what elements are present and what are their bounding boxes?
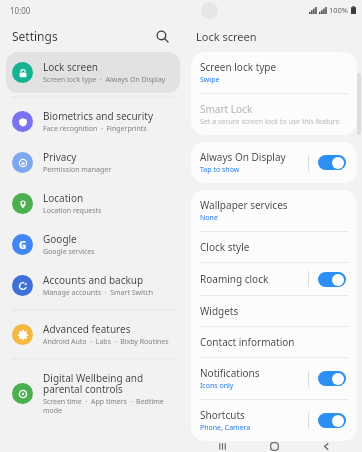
button[interactable]: Notifications <box>191 358 357 399</box>
staticText: Manage accounts · Smart Switch <box>43 288 154 298</box>
staticText: Set a secure screen lock to use this fea… <box>200 117 342 127</box>
button[interactable]: Roaming clock toggle <box>318 272 346 287</box>
staticText: Widgets <box>200 304 239 318</box>
button[interactable]: Smart Lock <box>191 94 357 135</box>
button[interactable]: Notifications toggle <box>318 371 346 386</box>
button[interactable]: Biometrics and security <box>6 101 180 142</box>
button[interactable]: Lock screen <box>6 52 180 93</box>
staticText: Swipe <box>200 75 220 85</box>
button[interactable]: Advanced features <box>6 314 180 355</box>
staticText: Clock style <box>200 240 250 254</box>
button[interactable]: Widgets <box>191 296 357 326</box>
button[interactable]: Privacy <box>6 142 180 183</box>
staticText: G <box>19 238 27 252</box>
staticText: 10:00 <box>10 5 31 16</box>
button[interactable]: Roaming clock <box>191 263 357 295</box>
button[interactable]: Screen lock type <box>191 52 357 93</box>
staticText: None <box>200 213 218 223</box>
staticText: Roaming clock <box>200 272 269 286</box>
staticText: Permission manager <box>43 165 112 175</box>
button[interactable]: Home <box>258 441 290 452</box>
staticText: Google <box>43 232 77 246</box>
staticText: Privacy <box>43 150 77 164</box>
button[interactable]: Always On Display toggle <box>318 155 346 170</box>
staticText: Phone, Camera <box>200 423 251 433</box>
staticText: Digital Wellbeing and parental controls <box>43 371 174 396</box>
button[interactable]: Recents <box>206 441 238 452</box>
button[interactable]: Digital Wellbeing and parental controls <box>6 363 180 423</box>
staticText: Settings <box>12 28 58 44</box>
staticText: Notifications <box>200 366 260 380</box>
button[interactable]: G <box>6 224 180 265</box>
staticText: Wallpaper services <box>200 198 288 212</box>
button[interactable]: Search <box>150 24 174 48</box>
staticText: Accounts and backup <box>43 273 144 287</box>
staticText: Screen lock type <box>200 60 277 74</box>
button[interactable]: Location <box>6 183 180 224</box>
staticText: Lock screen <box>43 60 99 74</box>
staticText: Location <box>43 191 84 205</box>
staticText: 100% <box>329 5 349 15</box>
staticText: Tap to show <box>200 165 240 175</box>
button[interactable]: Shortcuts <box>191 400 357 441</box>
staticText: Biometrics and security <box>43 109 153 123</box>
button[interactable]: Shortcuts toggle <box>318 413 346 428</box>
staticText: Screen lock type · Always On Display <box>43 75 166 85</box>
staticText: Location requests <box>43 206 102 216</box>
staticText: Android Auto · Labs · Bixby Routines <box>43 337 169 347</box>
button[interactable]: Wallpaper services <box>191 190 357 231</box>
staticText: Shortcuts <box>200 408 245 422</box>
staticText: Always On Display <box>200 150 286 164</box>
button[interactable]: Clock style <box>191 232 357 262</box>
staticText: Icons only <box>200 381 234 391</box>
staticText: Google services <box>43 247 95 257</box>
staticText: Face recognition · Fingerprints <box>43 124 147 134</box>
button[interactable]: Contact information <box>191 327 357 357</box>
staticText: Contact information <box>200 335 295 349</box>
staticText: Smart Lock <box>200 102 253 116</box>
staticText: Lock screen <box>196 29 257 44</box>
staticText: Screen time · App timers · Bedtime mode <box>43 397 174 415</box>
staticText: Advanced features <box>43 322 131 336</box>
button[interactable]: Back <box>310 441 342 452</box>
button[interactable]: Always On Display <box>191 142 357 183</box>
button[interactable]: Accounts and backup <box>6 265 180 306</box>
